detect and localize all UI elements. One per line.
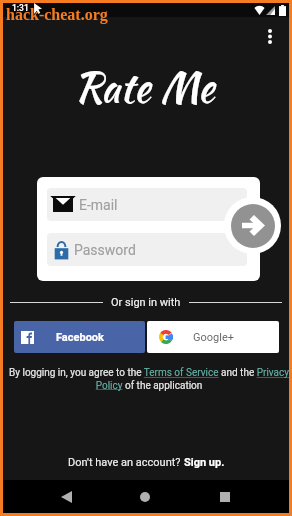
staticText: Rate Me (74, 58, 215, 117)
button[interactable]: Password (47, 233, 247, 266)
staticText: Sign up. (184, 456, 225, 469)
staticText: Or sign in with (111, 296, 181, 309)
button[interactable]: Home (127, 480, 163, 513)
button[interactable]: Don't have an account? (68, 456, 225, 469)
staticText: hack-cheat.org (6, 6, 108, 24)
staticText: Don't have an account? (68, 456, 184, 469)
staticText: Password (74, 242, 136, 258)
button[interactable]: Google+ (147, 321, 279, 353)
staticText: Facebook (56, 331, 104, 344)
staticText: By logging in, you agree to the Terms of… (9, 367, 289, 391)
button[interactable]: Facebook (14, 321, 145, 353)
button[interactable]: More options (254, 20, 286, 52)
staticText: 1:31 (12, 3, 29, 13)
button[interactable]: Recent apps (207, 480, 243, 513)
staticText: E-mail (79, 197, 118, 213)
button[interactable]: Sign in (231, 204, 275, 248)
button[interactable]: E-mail (47, 188, 247, 221)
button[interactable]: Back (48, 480, 84, 513)
staticText: Google+ (193, 331, 234, 344)
